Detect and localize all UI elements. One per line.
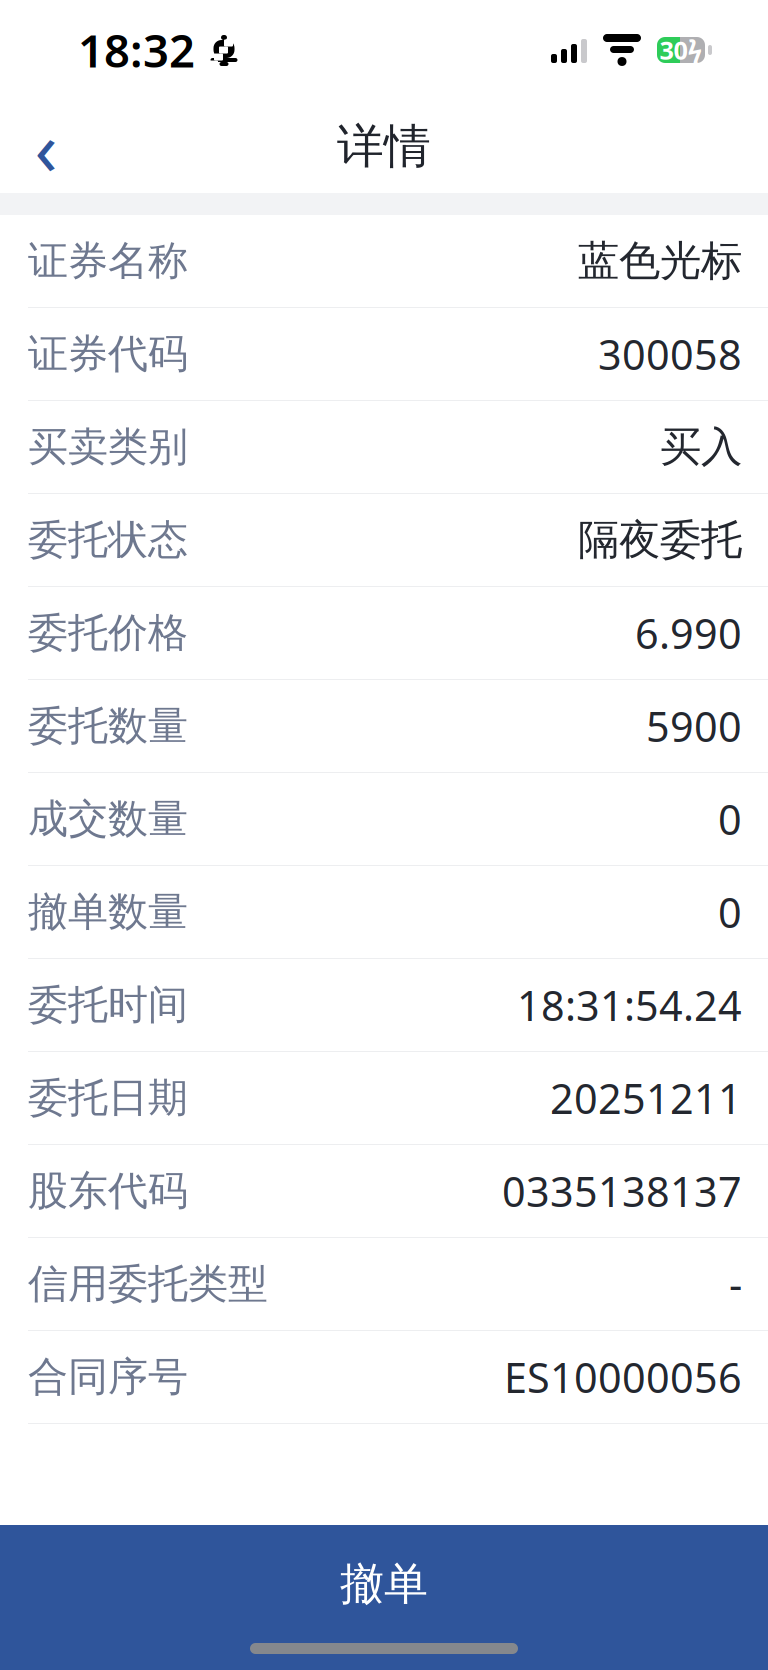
staticText: 0 — [718, 792, 742, 846]
staticText: ES10000056 — [504, 1350, 742, 1404]
staticText: 5900 — [646, 699, 742, 753]
staticText: 撤单数量 — [28, 887, 188, 936]
button[interactable]: 证券代码 — [0, 308, 768, 401]
button[interactable]: 委托状态 — [0, 494, 768, 587]
staticText: 成交数量 — [28, 794, 188, 843]
button[interactable]: 委托数量 — [0, 680, 768, 773]
staticText: 股东代码 — [28, 1166, 188, 1215]
button[interactable]: 买卖类别 — [0, 401, 768, 494]
staticText: 撤单 — [340, 1557, 428, 1611]
button[interactable]: 撤单数量 — [0, 866, 768, 959]
staticText: 隔夜委托 — [578, 515, 742, 565]
staticText: 证券代码 — [28, 329, 188, 378]
staticText: 买入 — [660, 422, 742, 472]
staticText: 委托数量 — [28, 701, 188, 750]
button[interactable]: 信用委托类型 — [0, 1238, 768, 1331]
staticText: 合同序号 — [28, 1352, 188, 1401]
staticText: 0 — [718, 885, 742, 939]
button[interactable]: 撤单 — [0, 1525, 768, 1670]
staticText: 委托时间 — [28, 980, 188, 1029]
staticText: 20251211 — [550, 1071, 742, 1125]
staticText: 信用委托类型 — [28, 1259, 268, 1308]
staticText: 6.990 — [635, 606, 742, 660]
staticText: 详情 — [337, 118, 431, 175]
button[interactable]: 委托时间 — [0, 959, 768, 1052]
button[interactable]: 证券名称 — [0, 215, 768, 308]
staticText: 30 — [659, 33, 687, 67]
staticText: 蓝色光标 — [578, 236, 742, 286]
staticText: 18:31:54.24 — [517, 978, 742, 1032]
staticText: 买卖类别 — [28, 422, 188, 471]
button[interactable]: 返回 — [0, 100, 92, 193]
staticText: - — [729, 1257, 742, 1311]
staticText: 委托价格 — [28, 608, 188, 657]
button[interactable]: 委托价格 — [0, 587, 768, 680]
staticText: 18:32 — [78, 20, 195, 80]
button[interactable]: 委托日期 — [0, 1052, 768, 1145]
staticText: 委托日期 — [28, 1073, 188, 1122]
staticText: 300058 — [598, 327, 742, 381]
button[interactable]: 股东代码 — [0, 1145, 768, 1238]
staticText: ‹ — [34, 97, 57, 196]
button[interactable]: 成交数量 — [0, 773, 768, 866]
staticText: 0335138137 — [502, 1164, 742, 1218]
button[interactable]: 合同序号 — [0, 1331, 768, 1424]
staticText: 委托状态 — [28, 515, 188, 564]
staticText: ϟ — [687, 32, 702, 68]
staticText: 证券名称 — [28, 236, 188, 285]
